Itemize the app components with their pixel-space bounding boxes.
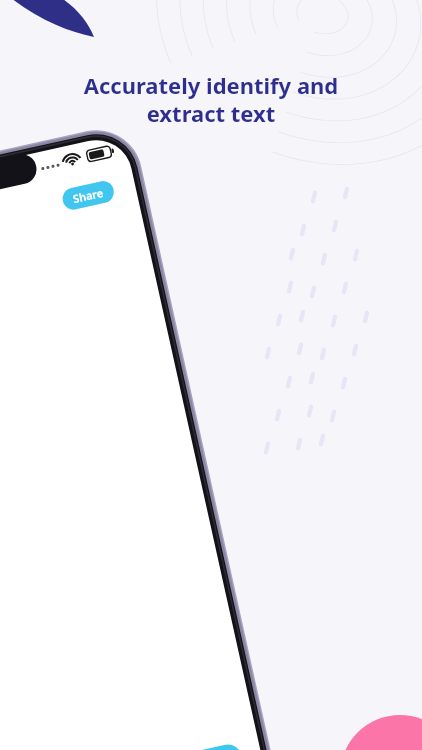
button[interactable]: Accurately identify and extract text onb… — [0, 0, 422, 750]
